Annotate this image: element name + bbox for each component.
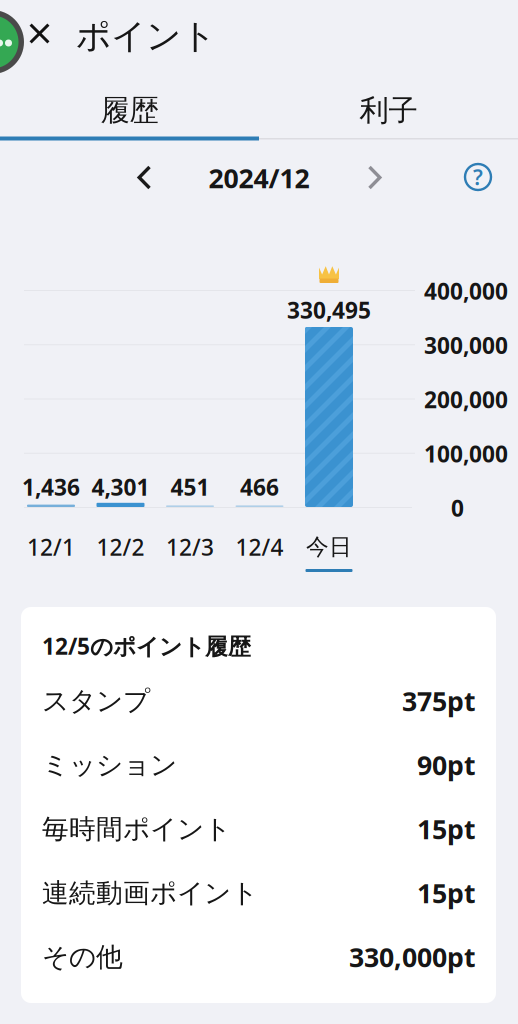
staticText: 連続動画ポイント	[42, 877, 258, 909]
staticText: その他	[42, 941, 123, 973]
button[interactable]: 利子	[259, 83, 518, 138]
staticText: 300,000	[424, 330, 508, 360]
staticText: 利子	[359, 92, 417, 128]
staticText: 466	[240, 472, 279, 502]
staticText: ミッション	[42, 749, 177, 781]
staticText: 90pt	[417, 747, 476, 783]
staticText: 12/3	[166, 532, 214, 562]
staticText: 400,000	[424, 276, 508, 306]
button[interactable]: スタンプ	[42, 669, 476, 733]
staticText: 4,301	[91, 472, 149, 502]
button[interactable]: その他	[42, 925, 476, 989]
button[interactable]: ミッション	[42, 733, 476, 797]
staticText: 100,000	[424, 439, 508, 469]
staticText: 1,436	[22, 472, 80, 502]
staticText: 375pt	[402, 683, 476, 719]
staticText: 12/2	[96, 532, 144, 562]
staticText: 12/1	[27, 532, 75, 562]
staticText: 0	[451, 493, 464, 523]
staticText: 200,000	[424, 384, 508, 414]
button[interactable]: 次の月	[366, 165, 383, 190]
staticText: 15pt	[417, 811, 476, 847]
button[interactable]: 閉じる	[29, 23, 50, 44]
staticText: 毎時間ポイント	[42, 813, 231, 845]
staticText: 今日	[306, 533, 352, 561]
button[interactable]: 毎時間ポイント	[42, 797, 476, 861]
staticText: 履歴	[100, 92, 158, 128]
staticText: 15pt	[417, 875, 476, 911]
button[interactable]: アシスタント	[0, 10, 24, 74]
staticText: ポイント	[76, 15, 216, 58]
staticText: 12/4	[235, 532, 283, 562]
staticText: 2024/12	[208, 160, 309, 196]
button[interactable]: 連続動画ポイント	[42, 861, 476, 925]
button[interactable]: ヘルプ	[464, 163, 492, 191]
button[interactable]: 履歴	[0, 83, 259, 138]
staticText: スタンプ	[42, 685, 150, 717]
staticText: ?	[473, 163, 483, 191]
staticText: 330,000pt	[349, 939, 476, 975]
staticText: 330,495	[287, 295, 371, 325]
button[interactable]: 前の月	[136, 165, 153, 190]
staticText: 12/5のポイント履歴	[42, 631, 251, 661]
staticText: 451	[170, 472, 209, 502]
